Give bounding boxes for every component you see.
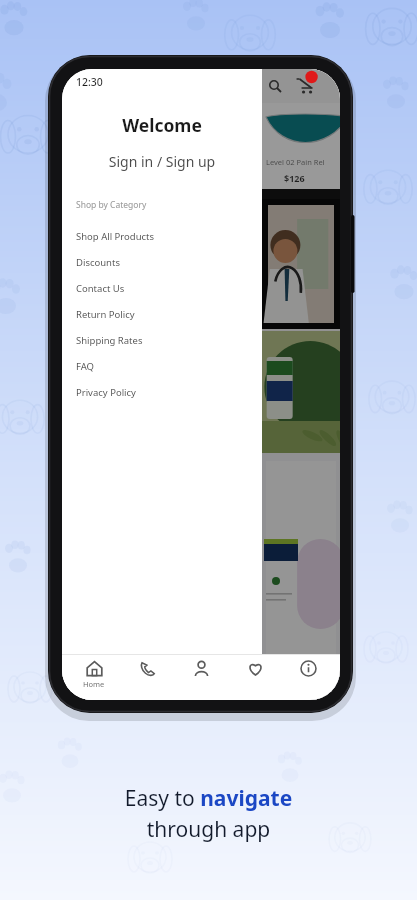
staticText: $126 xyxy=(284,172,305,184)
staticText: Return Policy xyxy=(76,308,135,321)
staticText: Shop All Products xyxy=(76,230,155,243)
staticText: Easy to navigate xyxy=(0,784,417,813)
button[interactable]: Contact Us xyxy=(62,275,262,301)
button[interactable]: Return Policy xyxy=(62,301,262,327)
staticText: Shop by Category xyxy=(76,199,147,211)
button[interactable]: Shipping Rates xyxy=(62,327,262,353)
staticText: Sign in / Sign up xyxy=(62,152,262,171)
button[interactable]: Discounts xyxy=(62,249,262,275)
button[interactable]: Shop All Products xyxy=(62,223,262,249)
button[interactable]: Info xyxy=(286,658,330,700)
button[interactable]: Home xyxy=(72,658,116,700)
staticText: Home xyxy=(83,679,105,689)
staticText: through app xyxy=(0,815,417,844)
button[interactable]: Privacy Policy xyxy=(62,379,262,405)
staticText: Shipping Rates xyxy=(76,334,143,347)
staticText: Welcome xyxy=(62,113,262,137)
button[interactable]: Account xyxy=(179,658,223,700)
staticText: Discounts xyxy=(76,256,120,269)
button[interactable]: Favourites xyxy=(233,658,277,700)
button[interactable]: FAQ xyxy=(62,353,262,379)
staticText: FAQ xyxy=(76,360,95,373)
staticText: Level 02 Pain Rel xyxy=(266,157,325,167)
staticText: Contact Us xyxy=(76,282,125,295)
button[interactable]: Call xyxy=(125,658,169,700)
staticText: Privacy Policy xyxy=(76,386,136,399)
staticText: 12:30 xyxy=(76,75,103,89)
button[interactable]: Sign in / Sign up xyxy=(62,150,262,173)
